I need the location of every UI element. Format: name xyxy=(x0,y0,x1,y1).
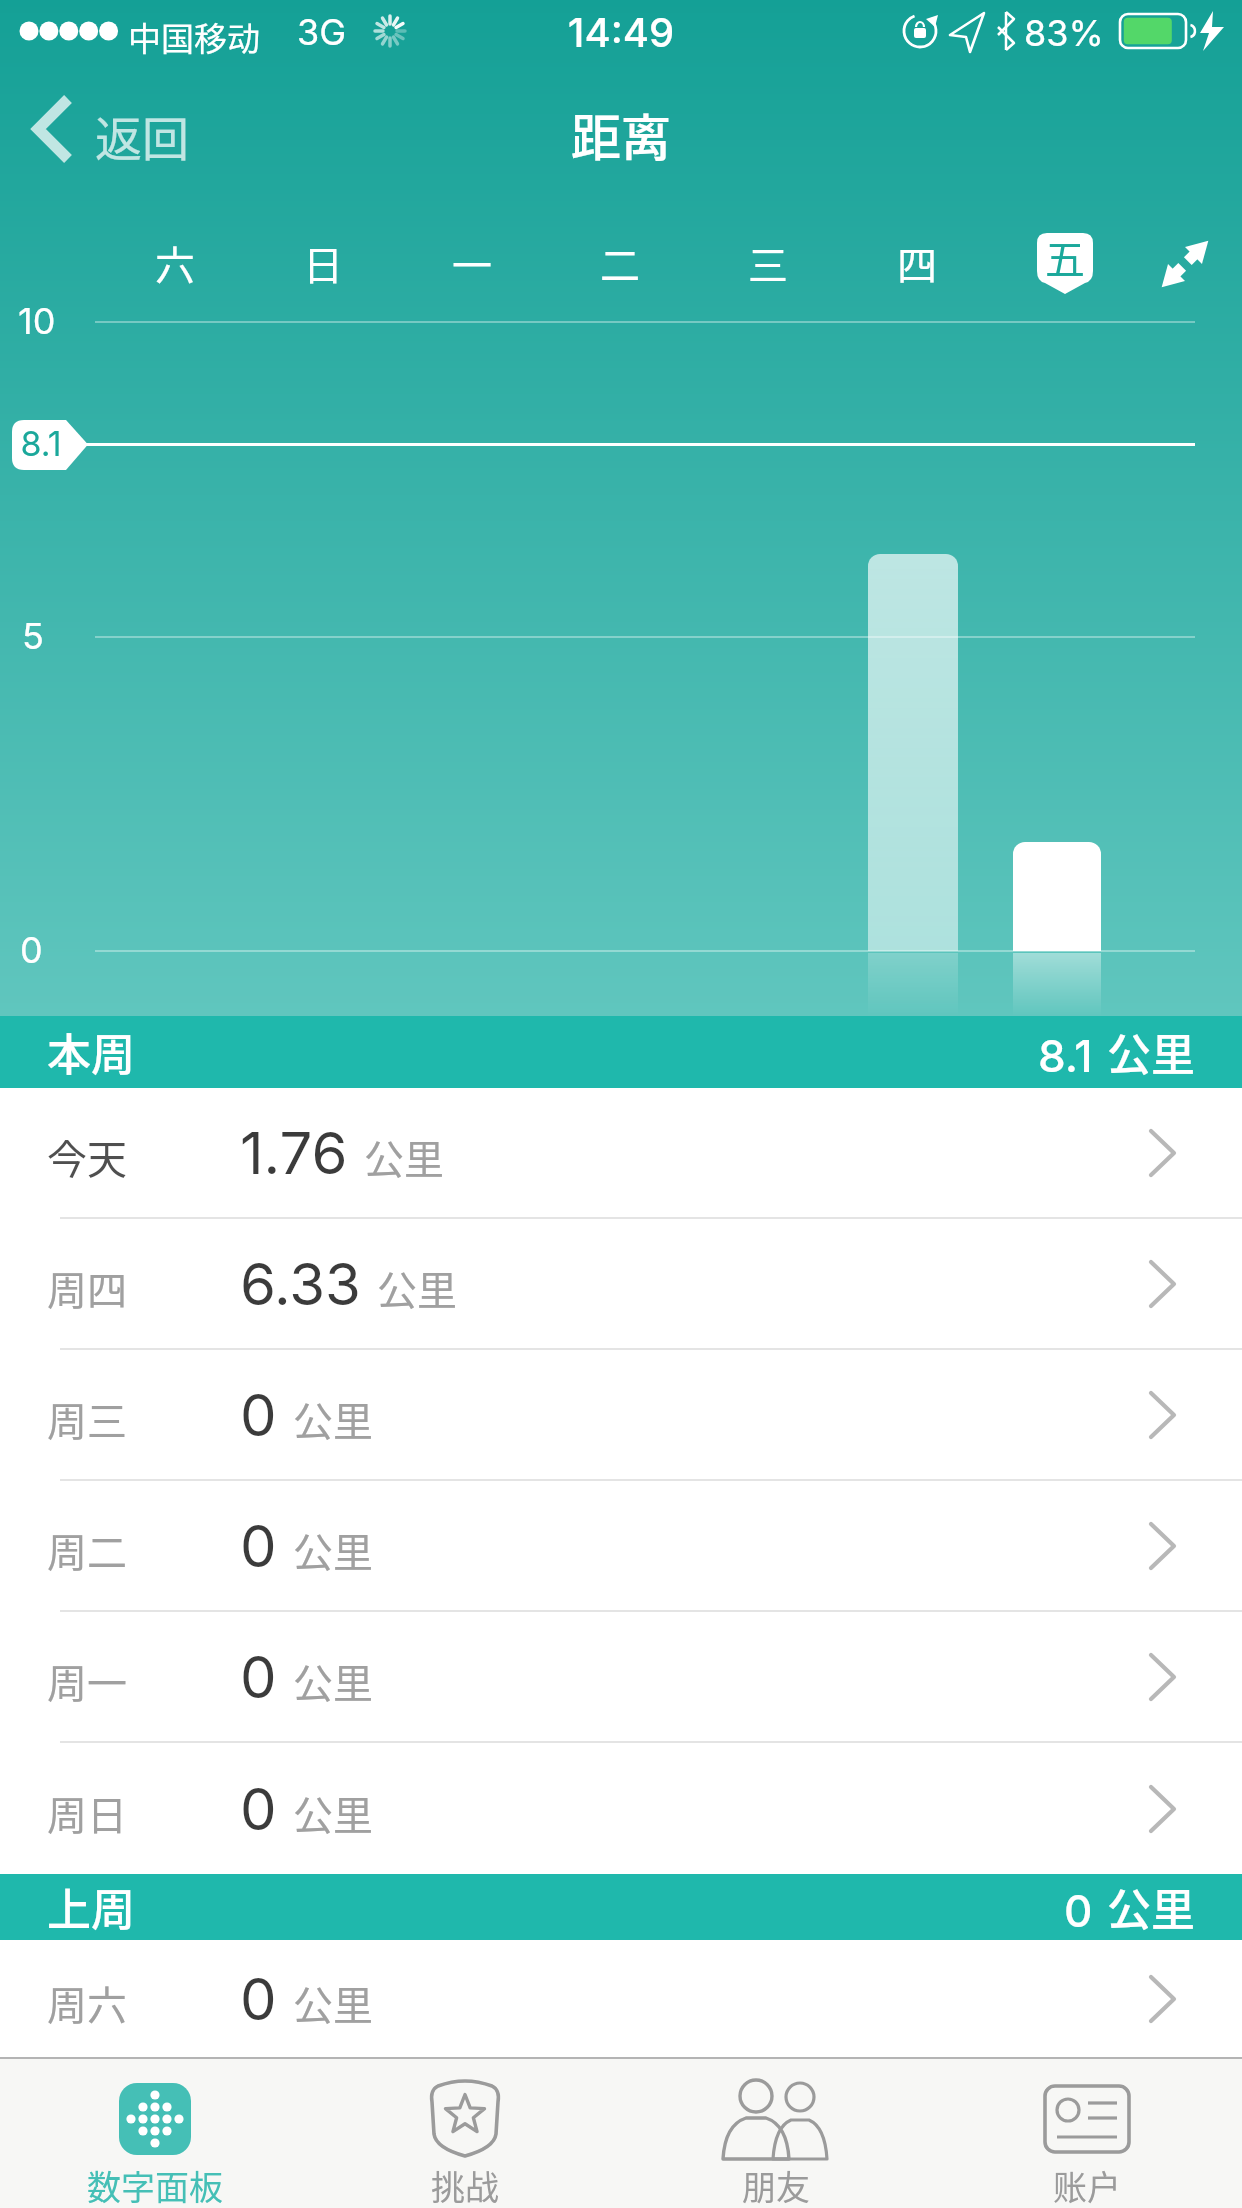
staticText: 公里 xyxy=(377,1259,457,1317)
staticText: 0 xyxy=(1064,1884,1093,1937)
staticText: 今天 xyxy=(47,1128,127,1186)
button[interactable]: 二 xyxy=(580,233,660,293)
staticText: 6.33 xyxy=(240,1249,361,1319)
staticText: 周四 xyxy=(47,1259,127,1317)
staticText: 账户 xyxy=(1053,2161,1121,2208)
button[interactable]: 三 xyxy=(728,233,808,293)
staticText: 3G xyxy=(297,10,347,54)
button[interactable]: 周二 xyxy=(0,1481,1242,1610)
staticText: 14:49 xyxy=(0,8,1242,56)
staticText: 周六 xyxy=(47,1974,127,2032)
staticText: 四 xyxy=(897,234,937,292)
button[interactable]: 挑战 xyxy=(310,2057,620,2208)
staticText: 周三 xyxy=(47,1390,127,1448)
staticText: 周日 xyxy=(47,1784,127,1842)
button[interactable]: 周四 xyxy=(0,1219,1242,1348)
staticText: 公里 xyxy=(293,1784,373,1842)
staticText: 8.1 xyxy=(12,423,70,464)
button[interactable] xyxy=(1150,229,1220,299)
staticText: 0 xyxy=(240,1642,277,1712)
staticText: 公里 xyxy=(1107,1020,1195,1084)
button[interactable]: 账户 xyxy=(931,2057,1242,2208)
staticText: 周一 xyxy=(47,1652,127,1710)
staticText: 日 xyxy=(303,234,343,292)
button[interactable]: 返回 xyxy=(20,81,190,181)
staticText: 0 xyxy=(20,928,43,972)
staticText: 公里 xyxy=(364,1128,444,1186)
staticText: 公里 xyxy=(1107,1875,1195,1939)
staticText: 0 xyxy=(240,1511,277,1581)
staticText: 公里 xyxy=(293,1652,373,1710)
button[interactable]: 日 xyxy=(283,233,363,293)
staticText: 返回 xyxy=(95,101,189,169)
staticText: 二 xyxy=(600,234,640,292)
staticText: 六 xyxy=(155,234,195,292)
button[interactable]: 周日 xyxy=(0,1743,1242,1874)
staticText: 一 xyxy=(452,234,492,292)
button[interactable]: 周三 xyxy=(0,1350,1242,1479)
staticText: 朋友 xyxy=(742,2161,810,2208)
staticText: 数字面板 xyxy=(87,2161,223,2208)
staticText: 0 xyxy=(240,1964,277,2034)
button[interactable]: 今天 xyxy=(0,1088,1242,1217)
button[interactable]: 数字面板 xyxy=(0,2057,310,2208)
staticText: 挑战 xyxy=(431,2161,499,2208)
staticText: 本周 xyxy=(47,1020,135,1084)
button[interactable]: 一 xyxy=(432,233,512,293)
button[interactable]: 六 xyxy=(135,233,215,293)
staticText: 距离 xyxy=(0,98,1242,170)
staticText: 上周 xyxy=(47,1875,135,1939)
staticText: 公里 xyxy=(293,1521,373,1579)
staticText: 0 xyxy=(240,1774,277,1844)
staticText: 五 xyxy=(1045,228,1085,286)
button[interactable]: 五 xyxy=(1025,227,1105,287)
staticText: 10 xyxy=(18,299,56,343)
staticText: 8.1 xyxy=(1038,1029,1093,1082)
staticText: 0 xyxy=(240,1380,277,1450)
staticText: 公里 xyxy=(293,1390,373,1448)
button[interactable]: 四 xyxy=(877,233,957,293)
button[interactable]: 周六 xyxy=(0,1940,1242,2057)
button[interactable]: 朋友 xyxy=(620,2057,931,2208)
staticText: 周二 xyxy=(47,1521,127,1579)
staticText: 中国移动 xyxy=(128,13,260,61)
staticText: 1.76 xyxy=(240,1118,348,1188)
staticText: 83% xyxy=(1024,11,1104,55)
staticText: 三 xyxy=(748,234,788,292)
button[interactable]: 周一 xyxy=(0,1612,1242,1741)
staticText: 5 xyxy=(22,614,44,658)
staticText: 公里 xyxy=(293,1974,373,2032)
